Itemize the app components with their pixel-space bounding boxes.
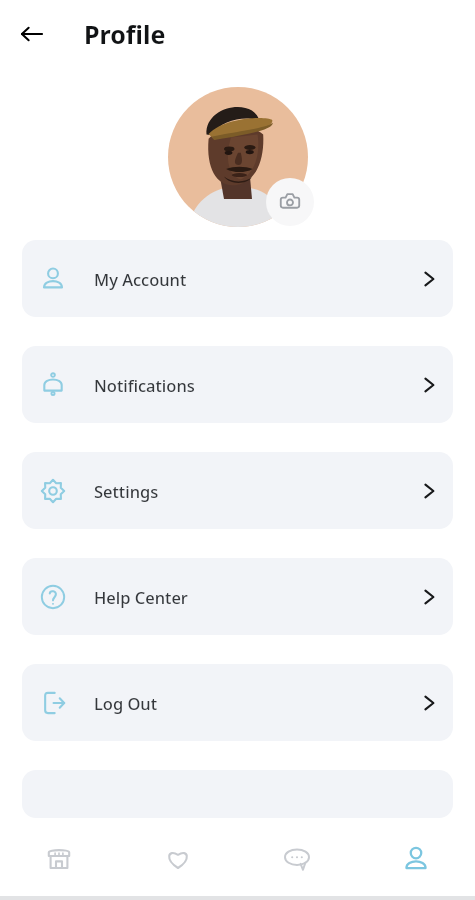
staticText: Profile	[84, 17, 166, 51]
staticText: Help Center	[94, 586, 188, 608]
staticText: Notifications	[94, 374, 195, 396]
button[interactable]: Favorites	[118, 818, 237, 900]
button[interactable]: Help Center	[22, 558, 453, 635]
staticText: My Account	[94, 268, 187, 290]
button[interactable]: Change photo	[266, 178, 314, 226]
button[interactable]: Messages	[237, 818, 356, 900]
button[interactable]: My Account	[22, 240, 453, 317]
button[interactable]: Notifications	[22, 346, 453, 423]
button[interactable]: Log Out	[22, 664, 453, 741]
button[interactable]: Settings	[22, 452, 453, 529]
button[interactable]: Shop	[0, 818, 118, 900]
button[interactable]: Profile	[356, 818, 475, 900]
button[interactable]: Back	[8, 10, 56, 58]
staticText: Settings	[94, 480, 159, 502]
staticText: Log Out	[94, 692, 158, 714]
